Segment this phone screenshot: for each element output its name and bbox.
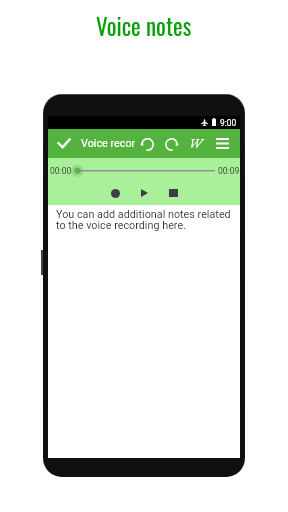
button[interactable]: Play: [134, 183, 154, 203]
staticText: Voice notes: [96, 9, 192, 43]
staticText: Voice recor: [81, 137, 136, 150]
staticText: W: [189, 135, 203, 152]
button[interactable]: Text format: [185, 134, 207, 153]
button[interactable]: Menu: [211, 134, 233, 153]
staticText: 00:09: [218, 166, 240, 176]
staticText: You can add additional notes related to …: [56, 208, 234, 232]
button[interactable]: Undo: [136, 134, 159, 154]
button[interactable]: Done: [53, 134, 75, 153]
button[interactable]: Redo: [160, 134, 183, 154]
button[interactable]: Record: [105, 183, 125, 203]
button[interactable]: Stop: [163, 183, 183, 203]
staticText: 00:00: [50, 166, 72, 176]
staticText: 9:00: [220, 118, 237, 127]
